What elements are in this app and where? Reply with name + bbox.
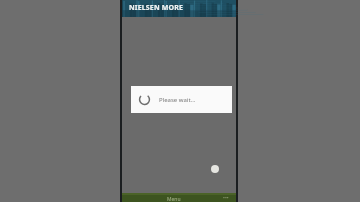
button[interactable]: Please wait... [131, 86, 232, 113]
staticText: Please wait... [159, 96, 196, 104]
staticText: ••• [223, 195, 229, 202]
staticText: NIELSEN MORE [129, 3, 183, 13]
staticText: Menu [167, 196, 181, 202]
button[interactable]: NIELSEN MORE [122, 0, 236, 17]
button[interactable]: Menu [122, 193, 236, 202]
button[interactable]: Add [211, 165, 219, 173]
